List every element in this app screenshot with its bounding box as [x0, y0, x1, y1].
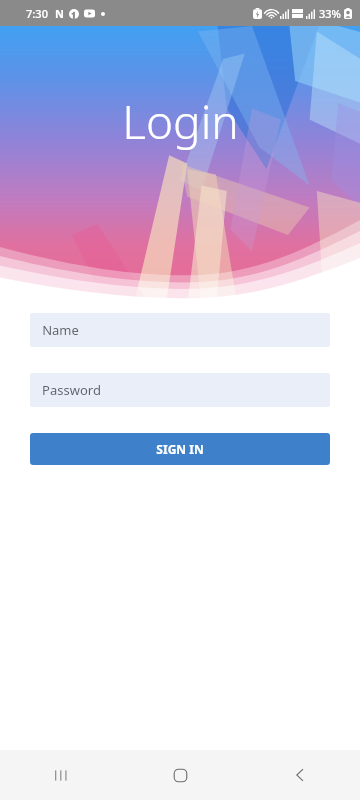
staticText: 7:30: [26, 6, 48, 21]
button[interactable]: Password: [30, 373, 330, 407]
staticText: Password: [42, 381, 101, 399]
button[interactable]: SIGN IN: [30, 433, 330, 465]
button[interactable]: Name: [30, 313, 330, 347]
staticText: Name: [42, 321, 79, 339]
staticText: 33%: [319, 6, 341, 21]
staticText: SIGN IN: [156, 441, 204, 457]
staticText: Login: [122, 90, 239, 153]
staticText: N: [55, 6, 64, 21]
button[interactable]: Back: [240, 750, 360, 800]
button[interactable]: Home: [120, 750, 240, 800]
button[interactable]: Recent apps: [0, 750, 120, 800]
